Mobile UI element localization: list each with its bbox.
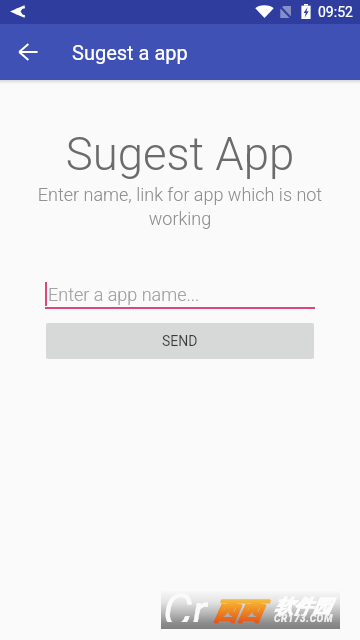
button[interactable]: Back	[4, 28, 52, 76]
staticText: Cr	[163, 584, 208, 622]
staticText: 软件园	[274, 595, 331, 619]
staticText: 西西	[214, 597, 262, 627]
staticText: Sugest a app	[72, 41, 188, 64]
button[interactable]: SEND	[46, 323, 314, 359]
staticText: 09:52	[318, 4, 353, 20]
staticText: Enter a app name...	[48, 284, 200, 305]
staticText: CR173.COM	[274, 613, 334, 625]
staticText: SEND	[162, 333, 198, 349]
button[interactable]: Enter a app name...	[45, 278, 315, 309]
staticText: Enter name, link for app which is not wo…	[30, 184, 330, 229]
staticText: 西西	[213, 596, 261, 626]
staticText: Sugest App	[0, 128, 360, 181]
